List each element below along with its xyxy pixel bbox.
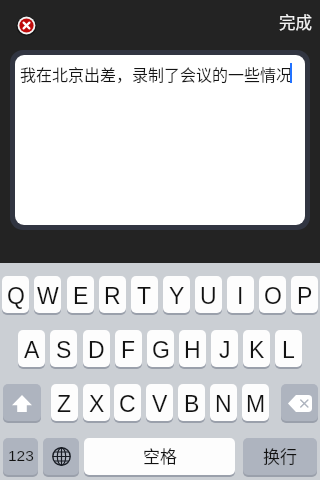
button[interactable]: I [227,276,254,313]
button[interactable]: P [291,276,318,313]
button[interactable]: Y [163,276,190,313]
button[interactable]: A [18,330,45,367]
staticText: 完成 [279,10,312,34]
button[interactable]: T [131,276,158,313]
staticText: G [152,337,170,363]
button[interactable]: X [83,384,110,421]
staticText: T [137,283,152,309]
button[interactable]: K [243,330,270,367]
staticText: W [37,283,59,309]
staticText: L [282,337,295,363]
staticText: S [56,337,72,363]
staticText: U [200,283,217,309]
staticText: A [24,337,40,363]
button[interactable]: B [178,384,205,421]
button[interactable]: 我在北京出差，录制了会议的一些情况 [15,55,305,225]
staticText: Z [57,391,72,417]
staticText: Q [7,283,25,309]
staticText: M [246,391,266,417]
staticText: R [104,283,121,309]
button[interactable]: 换行 [243,438,317,475]
staticText: I [237,283,244,309]
staticText: 空格 [143,443,177,468]
button[interactable]: L [275,330,302,367]
button[interactable]: Q [2,276,29,313]
staticText: K [249,337,265,363]
staticText: D [88,337,105,363]
staticText: P [297,283,313,309]
button[interactable]: H [179,330,206,367]
staticText: 换行 [263,443,297,468]
staticText: Y [169,283,185,309]
button[interactable]: S [50,330,77,367]
button[interactable]: J [211,330,238,367]
staticText: H [184,337,201,363]
button[interactable]: M [242,384,269,421]
button[interactable]: 123 [3,438,38,475]
button[interactable]: U [195,276,222,313]
staticText: O [264,283,282,309]
button[interactable]: F [115,330,142,367]
staticText: N [215,391,232,417]
button[interactable]: E [67,276,94,313]
staticText: X [89,391,105,417]
button[interactable]: R [99,276,126,313]
button[interactable]: O [259,276,286,313]
button[interactable]: Backspace [281,384,318,421]
button[interactable]: C [114,384,141,421]
button[interactable]: N [210,384,237,421]
button[interactable]: Shift [3,384,41,421]
staticText: J [219,337,231,363]
button[interactable]: Z [51,384,78,421]
staticText: 我在北京出差，录制了会议的一些情况 [20,62,293,85]
staticText: C [119,391,136,417]
staticText: B [184,391,200,417]
button[interactable]: G [147,330,174,367]
staticText: V [152,391,168,417]
button[interactable]: Switch keyboard [43,438,79,475]
staticText: E [73,283,89,309]
button[interactable]: D [83,330,110,367]
button[interactable]: Close [16,15,37,36]
button[interactable]: V [146,384,173,421]
staticText: F [121,337,136,363]
button[interactable]: 空格 [84,438,235,475]
button[interactable]: W [34,276,61,313]
staticText: 123 [8,447,34,464]
button[interactable]: 完成 [274,6,317,38]
